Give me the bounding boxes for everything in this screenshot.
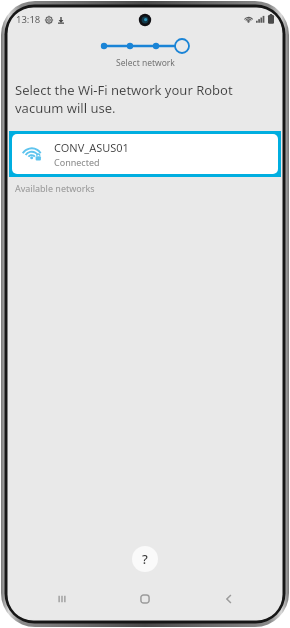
button[interactable]: Help [132,546,158,572]
staticText: 13:18 [16,13,41,26]
button[interactable]: Back [199,586,259,612]
button[interactable]: CONV_ASUS01 [9,131,281,177]
button[interactable]: Home [115,586,175,612]
staticText: Available networks [15,182,95,194]
staticText: CONV_ASUS01 [54,140,129,155]
staticText: Select the Wi-Fi network your Robot vacu… [15,81,233,117]
staticText: ? [142,550,148,568]
button[interactable]: Recent apps [32,586,92,612]
staticText: Connected [54,156,100,168]
staticText: Select network [116,57,175,69]
